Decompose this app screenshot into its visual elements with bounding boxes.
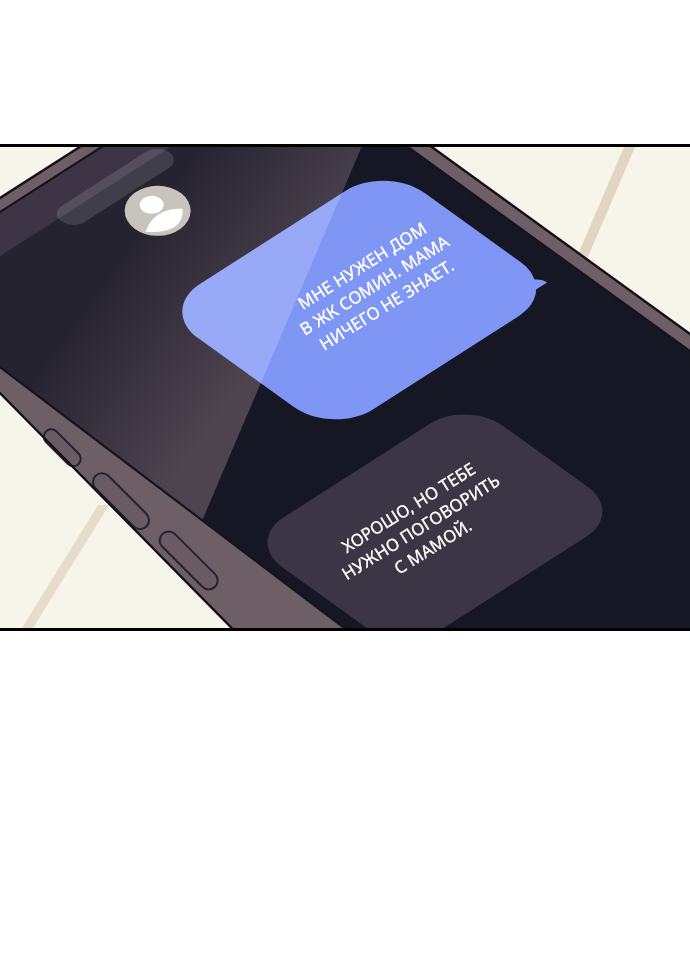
button[interactable]: Comic panel: chat on a phone <box>0 0 690 973</box>
